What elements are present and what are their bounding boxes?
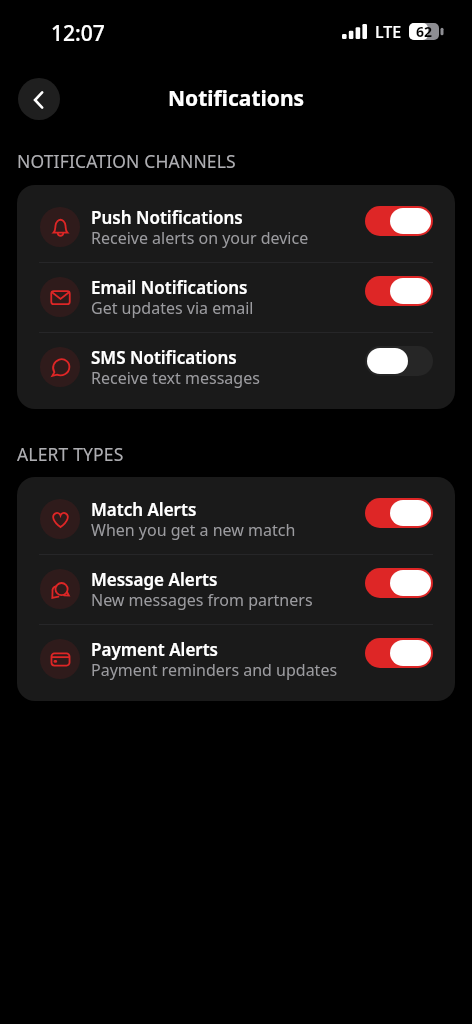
staticText: New messages from partners [91,589,313,611]
button[interactable]: Switch off [365,346,433,376]
staticText: Payment reminders and updates [91,659,338,681]
button[interactable]: Email Notifications [17,262,455,332]
button[interactable]: Message Alerts [17,554,455,624]
staticText: Match Alerts [91,498,197,521]
button[interactable]: Switch on [365,206,433,236]
staticText: Email Notifications [91,276,248,299]
staticText: 62 [416,22,433,39]
staticText: Receive text messages [91,367,260,389]
staticText: ALERT TYPES [17,442,124,466]
staticText: Get updates via email [91,297,254,319]
button[interactable]: SMS Notifications [17,332,455,402]
button[interactable]: Back [18,78,60,120]
button[interactable]: Push Notifications [17,192,455,262]
staticText: When you get a new match [91,519,296,541]
staticText: Message Alerts [91,568,218,591]
staticText: Push Notifications [91,206,243,229]
staticText: SMS Notifications [91,346,237,369]
staticText: NOTIFICATION CHANNELS [17,149,236,173]
button[interactable]: Switch on [365,638,433,668]
button[interactable]: Switch on [365,276,433,306]
button[interactable]: Match Alerts [17,484,455,554]
button[interactable]: Switch on [365,568,433,598]
staticText: 12:07 [51,19,105,48]
staticText: Receive alerts on your device [91,227,309,249]
button[interactable]: Switch on [365,498,433,528]
staticText: LTE [375,21,402,43]
staticText: Payment Alerts [91,638,218,661]
staticText: Notifications [168,84,305,113]
button[interactable]: Payment Alerts [17,624,455,694]
